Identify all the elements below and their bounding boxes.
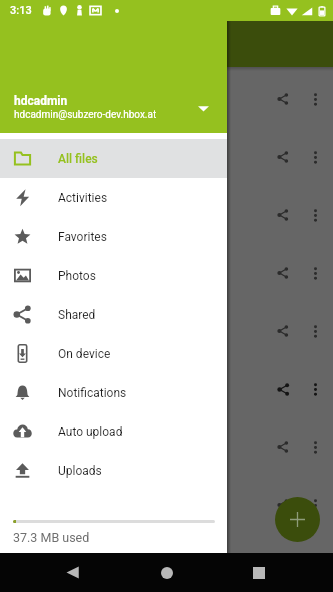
staticText: hdcadmin <box>14 94 68 108</box>
button[interactable]: All files <box>0 139 227 178</box>
staticText: hdcadmin@subzero-dev.hbox.at <box>14 109 157 121</box>
button[interactable]: Share <box>0 418 333 476</box>
button[interactable]: Share <box>0 244 333 302</box>
button[interactable]: Uploads <box>0 451 227 490</box>
staticText: 37.3 MB used <box>13 530 90 545</box>
button[interactable]: Share <box>0 128 333 186</box>
button[interactable]: More options <box>302 376 328 402</box>
button[interactable]: Auto upload <box>0 412 227 451</box>
staticText: Auto upload <box>58 425 123 439</box>
button[interactable]: Favorites <box>0 217 227 256</box>
button[interactable]: Share <box>0 70 333 128</box>
button[interactable]: Add <box>275 497 320 542</box>
button[interactable]: Activities <box>0 178 227 217</box>
staticText: Activities <box>58 191 108 205</box>
button[interactable]: Share <box>268 84 298 114</box>
button[interactable]: More options <box>302 144 328 170</box>
staticText: 3:13 <box>10 4 32 17</box>
button[interactable]: Share <box>268 432 298 462</box>
staticText: Notifications <box>58 386 127 400</box>
button[interactable]: Photos <box>0 256 227 295</box>
button[interactable]: Share <box>0 476 333 534</box>
button[interactable]: More options <box>302 202 328 228</box>
staticText: Favorites <box>58 230 107 244</box>
button[interactable]: Shared <box>0 295 227 334</box>
button[interactable]: Notifications <box>0 373 227 412</box>
staticText: Uploads <box>58 464 102 478</box>
button[interactable]: More options <box>302 434 328 460</box>
button[interactable]: Share <box>0 360 333 418</box>
staticText: All files <box>58 152 98 166</box>
staticText: Shared <box>58 308 96 322</box>
button[interactable]: More options <box>302 86 328 112</box>
button[interactable]: More options <box>302 492 328 518</box>
button[interactable]: Share <box>268 374 298 404</box>
button[interactable]: Home <box>146 553 187 592</box>
button[interactable]: Share <box>0 302 333 360</box>
staticText: Photos <box>58 269 96 283</box>
button[interactable]: Share <box>268 490 298 520</box>
button[interactable]: Switch account <box>192 97 214 119</box>
button[interactable]: Share <box>0 186 333 244</box>
staticText: On device <box>58 347 111 361</box>
button[interactable]: Share <box>268 258 298 288</box>
button[interactable]: More options <box>302 260 328 286</box>
button[interactable]: On device <box>0 334 227 373</box>
button[interactable]: Share <box>268 142 298 172</box>
button[interactable]: Back <box>52 553 93 592</box>
button[interactable]: Share <box>268 316 298 346</box>
button[interactable]: Share <box>268 200 298 230</box>
button[interactable]: Recents <box>238 553 279 592</box>
button[interactable]: More options <box>302 318 328 344</box>
